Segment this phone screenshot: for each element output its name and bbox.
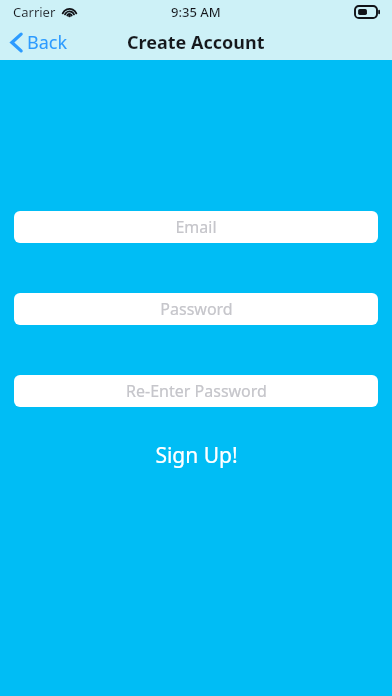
staticText: Carrier bbox=[13, 3, 56, 21]
staticText: Create Account bbox=[127, 30, 265, 55]
button[interactable]: Email bbox=[14, 211, 378, 243]
staticText: Email bbox=[175, 216, 217, 238]
button[interactable]: Back bbox=[0, 25, 80, 60]
button[interactable]: Sign Up! bbox=[141, 435, 252, 476]
button[interactable]: Re-Enter Password bbox=[14, 375, 378, 407]
staticText: Password bbox=[160, 298, 233, 320]
staticText: Sign Up! bbox=[155, 441, 238, 470]
staticText: Back bbox=[27, 30, 68, 55]
staticText: 9:35 AM bbox=[171, 3, 221, 21]
button[interactable]: Password bbox=[14, 293, 378, 325]
staticText: Re-Enter Password bbox=[126, 380, 267, 402]
